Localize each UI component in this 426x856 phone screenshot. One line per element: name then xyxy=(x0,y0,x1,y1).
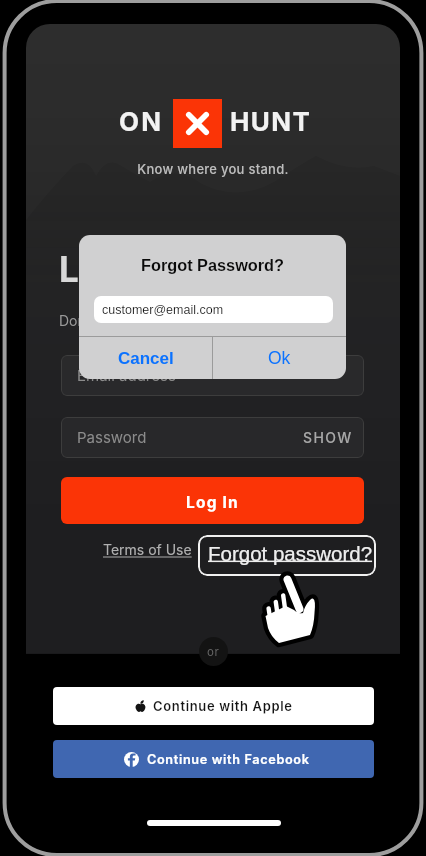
button[interactable]: Cancel xyxy=(79,337,212,379)
staticText: Cancel xyxy=(118,349,174,368)
staticText: Know where you stand. xyxy=(26,161,400,177)
button[interactable]: Password xyxy=(61,417,364,458)
button[interactable]: Ok xyxy=(213,337,346,379)
staticText: Log In xyxy=(186,493,239,512)
staticText: Continue with Facebook xyxy=(147,752,310,767)
staticText: customer@email.com xyxy=(102,303,224,317)
staticText: Don't have an account? Sign up xyxy=(59,312,269,329)
button[interactable]: Log In xyxy=(61,477,364,524)
button[interactable]: Continue with Apple xyxy=(53,687,374,725)
button[interactable]: Terms of Use xyxy=(103,541,192,558)
staticText: Password xyxy=(77,428,147,446)
staticText: Forgot password? xyxy=(208,542,373,565)
button[interactable]: Email address xyxy=(61,355,364,396)
button[interactable]: Continue with Facebook xyxy=(53,740,374,778)
staticText: Ok xyxy=(268,348,291,368)
staticText: Email address xyxy=(77,366,176,384)
staticText: ON xyxy=(119,106,164,137)
staticText: Log in xyxy=(59,248,162,290)
button[interactable]: customer@email.com xyxy=(94,296,333,323)
button[interactable]: SHOW xyxy=(303,429,353,446)
staticText: HUNT xyxy=(230,106,312,137)
staticText: Forgot Password? xyxy=(79,256,346,274)
button[interactable]: Forgot password? xyxy=(198,535,376,576)
staticText: or xyxy=(207,645,220,659)
staticText: Continue with Apple xyxy=(153,698,293,714)
